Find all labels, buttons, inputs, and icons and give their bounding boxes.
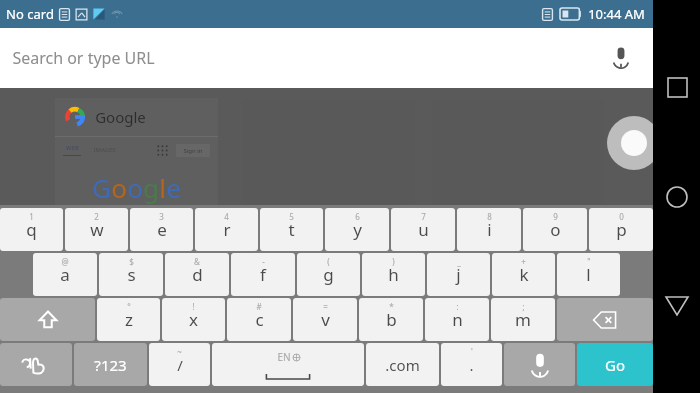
button[interactable]: Backspace <box>557 298 653 341</box>
button[interactable]: # <box>227 298 291 341</box>
staticText: # <box>256 301 262 312</box>
staticText: ~ <box>177 346 182 357</box>
button[interactable]: .com <box>366 343 439 386</box>
button[interactable]: ° <box>97 298 160 341</box>
button[interactable]: New tab <box>607 116 661 170</box>
staticText: : <box>456 301 459 312</box>
staticText: Go <box>605 355 625 375</box>
staticText: . <box>469 355 474 375</box>
staticText: ° <box>127 301 131 312</box>
button[interactable]: 1 <box>0 208 63 251</box>
staticText: IMAGES <box>93 146 116 154</box>
staticText: 0 <box>619 211 624 222</box>
staticText: u <box>418 218 429 241</box>
staticText: * <box>389 301 394 312</box>
staticText: 1 <box>29 211 34 222</box>
button[interactable]: @ <box>33 253 97 296</box>
button[interactable]: = <box>293 298 357 341</box>
button[interactable]: - <box>231 253 295 296</box>
staticText: ) <box>392 256 395 267</box>
button[interactable]: " <box>557 253 620 296</box>
staticText: d <box>192 263 203 286</box>
button[interactable]: Shift <box>0 298 95 341</box>
staticText: o <box>111 170 127 205</box>
staticText: + <box>521 256 526 267</box>
staticText: 7 <box>421 211 426 222</box>
button[interactable]: Voice search <box>603 40 639 76</box>
button[interactable]: & <box>165 253 229 296</box>
staticText: No card <box>6 5 54 23</box>
button[interactable]: 3 <box>130 208 193 251</box>
staticText: Google <box>95 107 146 127</box>
button[interactable]: ~ <box>149 343 210 386</box>
button[interactable]: ! <box>162 298 225 341</box>
button[interactable]: Home <box>654 174 700 220</box>
button[interactable]: 8 <box>457 208 521 251</box>
button[interactable]: * <box>359 298 423 341</box>
staticText: / <box>177 355 183 375</box>
staticText: k <box>519 263 529 286</box>
staticText: G <box>92 170 111 205</box>
button[interactable]: 2 <box>65 208 128 251</box>
button[interactable]: Handwriting <box>0 343 72 386</box>
staticText: s <box>127 263 136 286</box>
button[interactable]: $ <box>99 253 163 296</box>
staticText: $ <box>129 256 134 267</box>
button[interactable]: Go <box>577 343 653 386</box>
staticText: g <box>323 263 334 286</box>
button[interactable]: 7 <box>391 208 455 251</box>
button[interactable]: 6 <box>325 208 389 251</box>
button[interactable]: EN <box>212 343 364 386</box>
button[interactable]: Voice input <box>504 343 575 386</box>
staticText: - <box>262 256 265 267</box>
staticText: 2 <box>94 211 99 222</box>
button[interactable]: 5 <box>260 208 323 251</box>
button[interactable]: ( <box>297 253 360 296</box>
button[interactable]: Back <box>654 283 700 329</box>
staticText: b <box>386 308 397 331</box>
staticText: r <box>223 218 231 241</box>
button[interactable]: ; <box>491 298 555 341</box>
button[interactable]: + <box>492 253 555 296</box>
staticText: t <box>288 218 295 241</box>
staticText: & <box>194 256 200 267</box>
button[interactable]: ?123 <box>74 343 147 386</box>
staticText: m <box>515 308 531 331</box>
button[interactable]: ' <box>441 343 502 386</box>
button[interactable]: ) <box>362 253 425 296</box>
staticText: = <box>323 301 328 312</box>
staticText: 9 <box>553 211 558 222</box>
staticText: ' <box>471 346 473 357</box>
staticText: 8 <box>487 211 492 222</box>
staticText: z <box>125 308 133 331</box>
staticText: p <box>616 218 627 241</box>
staticText: x <box>189 308 198 331</box>
staticText: ! <box>192 301 195 312</box>
staticText: 10:44 AM <box>588 5 645 23</box>
button[interactable]: 0 <box>589 208 653 251</box>
staticText: ?123 <box>94 355 127 375</box>
staticText: WEB <box>66 144 79 152</box>
staticText: ( <box>327 256 330 267</box>
button[interactable]: Search or type URL <box>0 28 653 88</box>
button[interactable]: Google <box>55 98 218 205</box>
button[interactable]: _ <box>427 253 490 296</box>
staticText: " <box>587 256 591 267</box>
staticText: @ <box>61 256 69 267</box>
staticText: o <box>550 218 561 241</box>
button[interactable]: : <box>425 298 489 341</box>
staticText: _ <box>457 256 461 267</box>
staticText: 3 <box>159 211 164 222</box>
button[interactable]: Recent apps <box>654 64 700 110</box>
staticText: Search or type URL <box>12 47 155 69</box>
staticText: ; <box>522 301 525 312</box>
staticText: h <box>388 263 399 286</box>
staticText: n <box>452 308 463 331</box>
button[interactable]: 9 <box>523 208 587 251</box>
staticText: g <box>143 170 159 205</box>
staticText: c <box>255 308 264 331</box>
button[interactable]: 4 <box>195 208 258 251</box>
staticText: j <box>456 263 461 286</box>
